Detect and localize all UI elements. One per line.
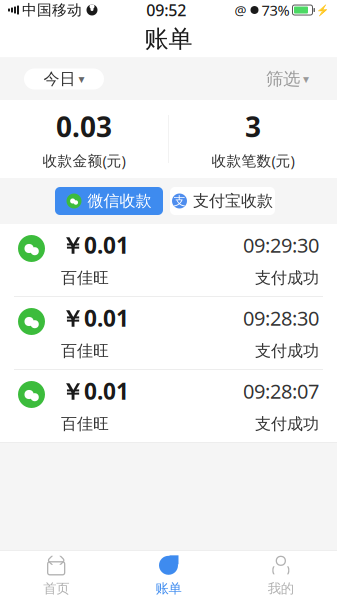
button[interactable]: ￥0.01 bbox=[0, 224, 337, 296]
staticText: 账单 bbox=[144, 24, 192, 54]
staticText: 百佳旺 bbox=[61, 414, 109, 434]
button[interactable]: 首页 bbox=[0, 551, 112, 600]
staticText: 支付宝收款 bbox=[193, 191, 273, 211]
button[interactable]: 筛选 bbox=[262, 64, 313, 94]
staticText: ▾ bbox=[78, 72, 84, 86]
button[interactable]: 支 bbox=[170, 187, 275, 215]
button[interactable]: 微信收款 bbox=[55, 187, 163, 215]
button[interactable]: 我的 bbox=[225, 551, 337, 600]
staticText: 支付成功 bbox=[255, 414, 319, 434]
staticText: ￥0.01 bbox=[61, 376, 129, 406]
staticText: 3 bbox=[245, 108, 261, 145]
staticText: ⚡ bbox=[316, 4, 329, 16]
button[interactable]: 今日 bbox=[24, 68, 104, 89]
staticText: 09:28:07 bbox=[243, 378, 319, 404]
staticText: 账单 bbox=[155, 580, 181, 597]
staticText: 收款金额(元) bbox=[43, 151, 126, 170]
staticText: 0.03 bbox=[56, 108, 112, 145]
staticText: 百佳旺 bbox=[61, 341, 109, 361]
staticText: 首页 bbox=[43, 580, 69, 597]
staticText: 筛选 bbox=[266, 68, 300, 90]
staticText: 09:52 bbox=[146, 0, 186, 21]
button[interactable]: ￥0.01 bbox=[0, 297, 337, 369]
staticText: 09:28:30 bbox=[243, 305, 319, 331]
staticText: 支 bbox=[173, 194, 185, 208]
staticText: 百佳旺 bbox=[61, 268, 109, 288]
staticText: 09:29:30 bbox=[243, 232, 319, 258]
staticText: 73% bbox=[261, 0, 289, 20]
staticText: ▾ bbox=[303, 72, 309, 86]
staticText: 微信收款 bbox=[87, 191, 151, 211]
button[interactable]: 账单 bbox=[112, 551, 225, 600]
staticText: 收款笔数(元) bbox=[211, 151, 294, 170]
staticText: 支付成功 bbox=[255, 268, 319, 288]
staticText: 中国移动 bbox=[22, 1, 82, 19]
staticText: 今日 bbox=[43, 69, 75, 89]
staticText: ￥0.01 bbox=[61, 303, 129, 333]
staticText: ￥0.01 bbox=[61, 230, 129, 260]
staticText: 我的 bbox=[268, 580, 294, 597]
button[interactable]: ￥0.01 bbox=[0, 370, 337, 442]
staticText: 支付成功 bbox=[255, 341, 319, 361]
staticText: @ bbox=[234, 1, 246, 19]
